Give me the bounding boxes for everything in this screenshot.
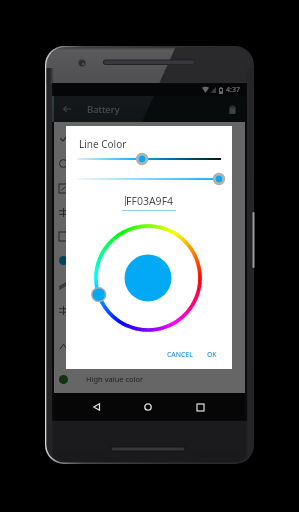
staticText: Show battery percentage bbox=[86, 133, 175, 143]
button[interactable]: Battery history bbox=[54, 151, 245, 175]
staticText: FF03A9F4 bbox=[126, 194, 174, 208]
staticText: 4:37 bbox=[226, 85, 240, 95]
staticText: Battery history bbox=[86, 158, 138, 168]
button[interactable]: High value color bbox=[54, 367, 245, 391]
button[interactable]: Grid lines bbox=[54, 298, 245, 322]
button[interactable]: Back bbox=[86, 397, 106, 417]
staticText: Battery bbox=[87, 103, 120, 116]
staticText: Line Color bbox=[79, 137, 127, 151]
staticText: High value color bbox=[86, 374, 144, 384]
button[interactable]: Show battery percentage bbox=[54, 126, 245, 150]
button[interactable]: CANCEL bbox=[163, 346, 197, 363]
staticText: CANCEL bbox=[167, 350, 193, 359]
staticText: OK bbox=[207, 350, 217, 359]
button[interactable]: Fill chart bbox=[54, 224, 245, 248]
button[interactable]: Low value color bbox=[54, 334, 245, 358]
button[interactable]: Chart style bbox=[54, 176, 245, 200]
staticText: Smooth curve bbox=[86, 280, 135, 290]
staticText: Line color bbox=[86, 255, 121, 265]
button[interactable]: Delete bbox=[221, 98, 243, 120]
staticText: Grid lines bbox=[86, 305, 120, 315]
button[interactable]: Color wheel bbox=[87, 217, 209, 339]
button[interactable]: Navigate up bbox=[54, 96, 80, 122]
button[interactable]: Grid lines bbox=[54, 200, 245, 224]
button[interactable]: Smooth curve bbox=[54, 273, 245, 297]
staticText: Fill chart bbox=[86, 231, 116, 241]
button[interactable]: Home bbox=[138, 397, 158, 417]
button[interactable]: Line color bbox=[54, 248, 245, 272]
button[interactable]: Recent apps bbox=[190, 397, 210, 417]
button[interactable]: Slider bbox=[66, 172, 232, 186]
button[interactable]: Slider bbox=[66, 152, 232, 166]
button[interactable]: OK bbox=[203, 346, 221, 363]
